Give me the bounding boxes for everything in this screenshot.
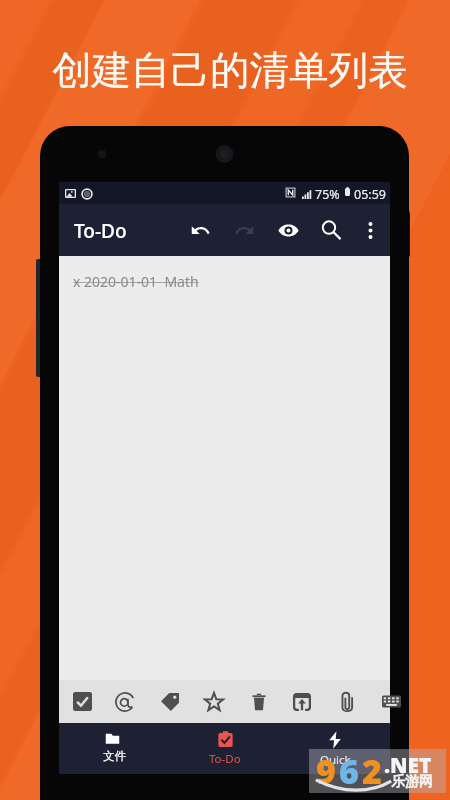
button[interactable]: Keyboard	[374, 680, 408, 723]
button[interactable]: Undo	[180, 210, 220, 250]
button[interactable]: Search	[311, 210, 351, 250]
staticText: 6	[339, 748, 359, 792]
staticText: To-Do	[74, 218, 127, 244]
staticText: .NET	[384, 751, 432, 780]
button[interactable]: To-Do	[170, 723, 280, 774]
staticText: 75%	[315, 186, 340, 203]
staticText: Quick	[320, 752, 351, 768]
staticText: To-Do	[209, 751, 241, 767]
staticText: 2	[362, 748, 382, 792]
button[interactable]: Priority	[197, 680, 231, 723]
staticText: 文件	[103, 749, 126, 763]
staticText: 乐游网	[391, 773, 433, 791]
button[interactable]: Tag	[153, 680, 187, 723]
button[interactable]: 文件	[59, 723, 170, 774]
button[interactable]: More options	[350, 210, 390, 250]
button[interactable]: Delete	[242, 680, 276, 723]
staticText: x 2020-01-01 Math	[73, 272, 199, 291]
staticText: 05:59	[354, 186, 386, 203]
button[interactable]: Attach	[330, 680, 364, 723]
button[interactable]: Context	[108, 680, 142, 723]
button[interactable]: Quick	[280, 723, 390, 774]
button[interactable]: Redo	[224, 210, 264, 250]
staticText: 9	[316, 748, 336, 792]
button[interactable]: Preview	[268, 210, 308, 250]
button[interactable]: Share	[285, 680, 319, 723]
button[interactable]: x 2020-01-01 Math	[59, 256, 390, 300]
button[interactable]: Complete	[65, 680, 99, 723]
staticText: 创建自己的清单列表	[52, 46, 408, 96]
